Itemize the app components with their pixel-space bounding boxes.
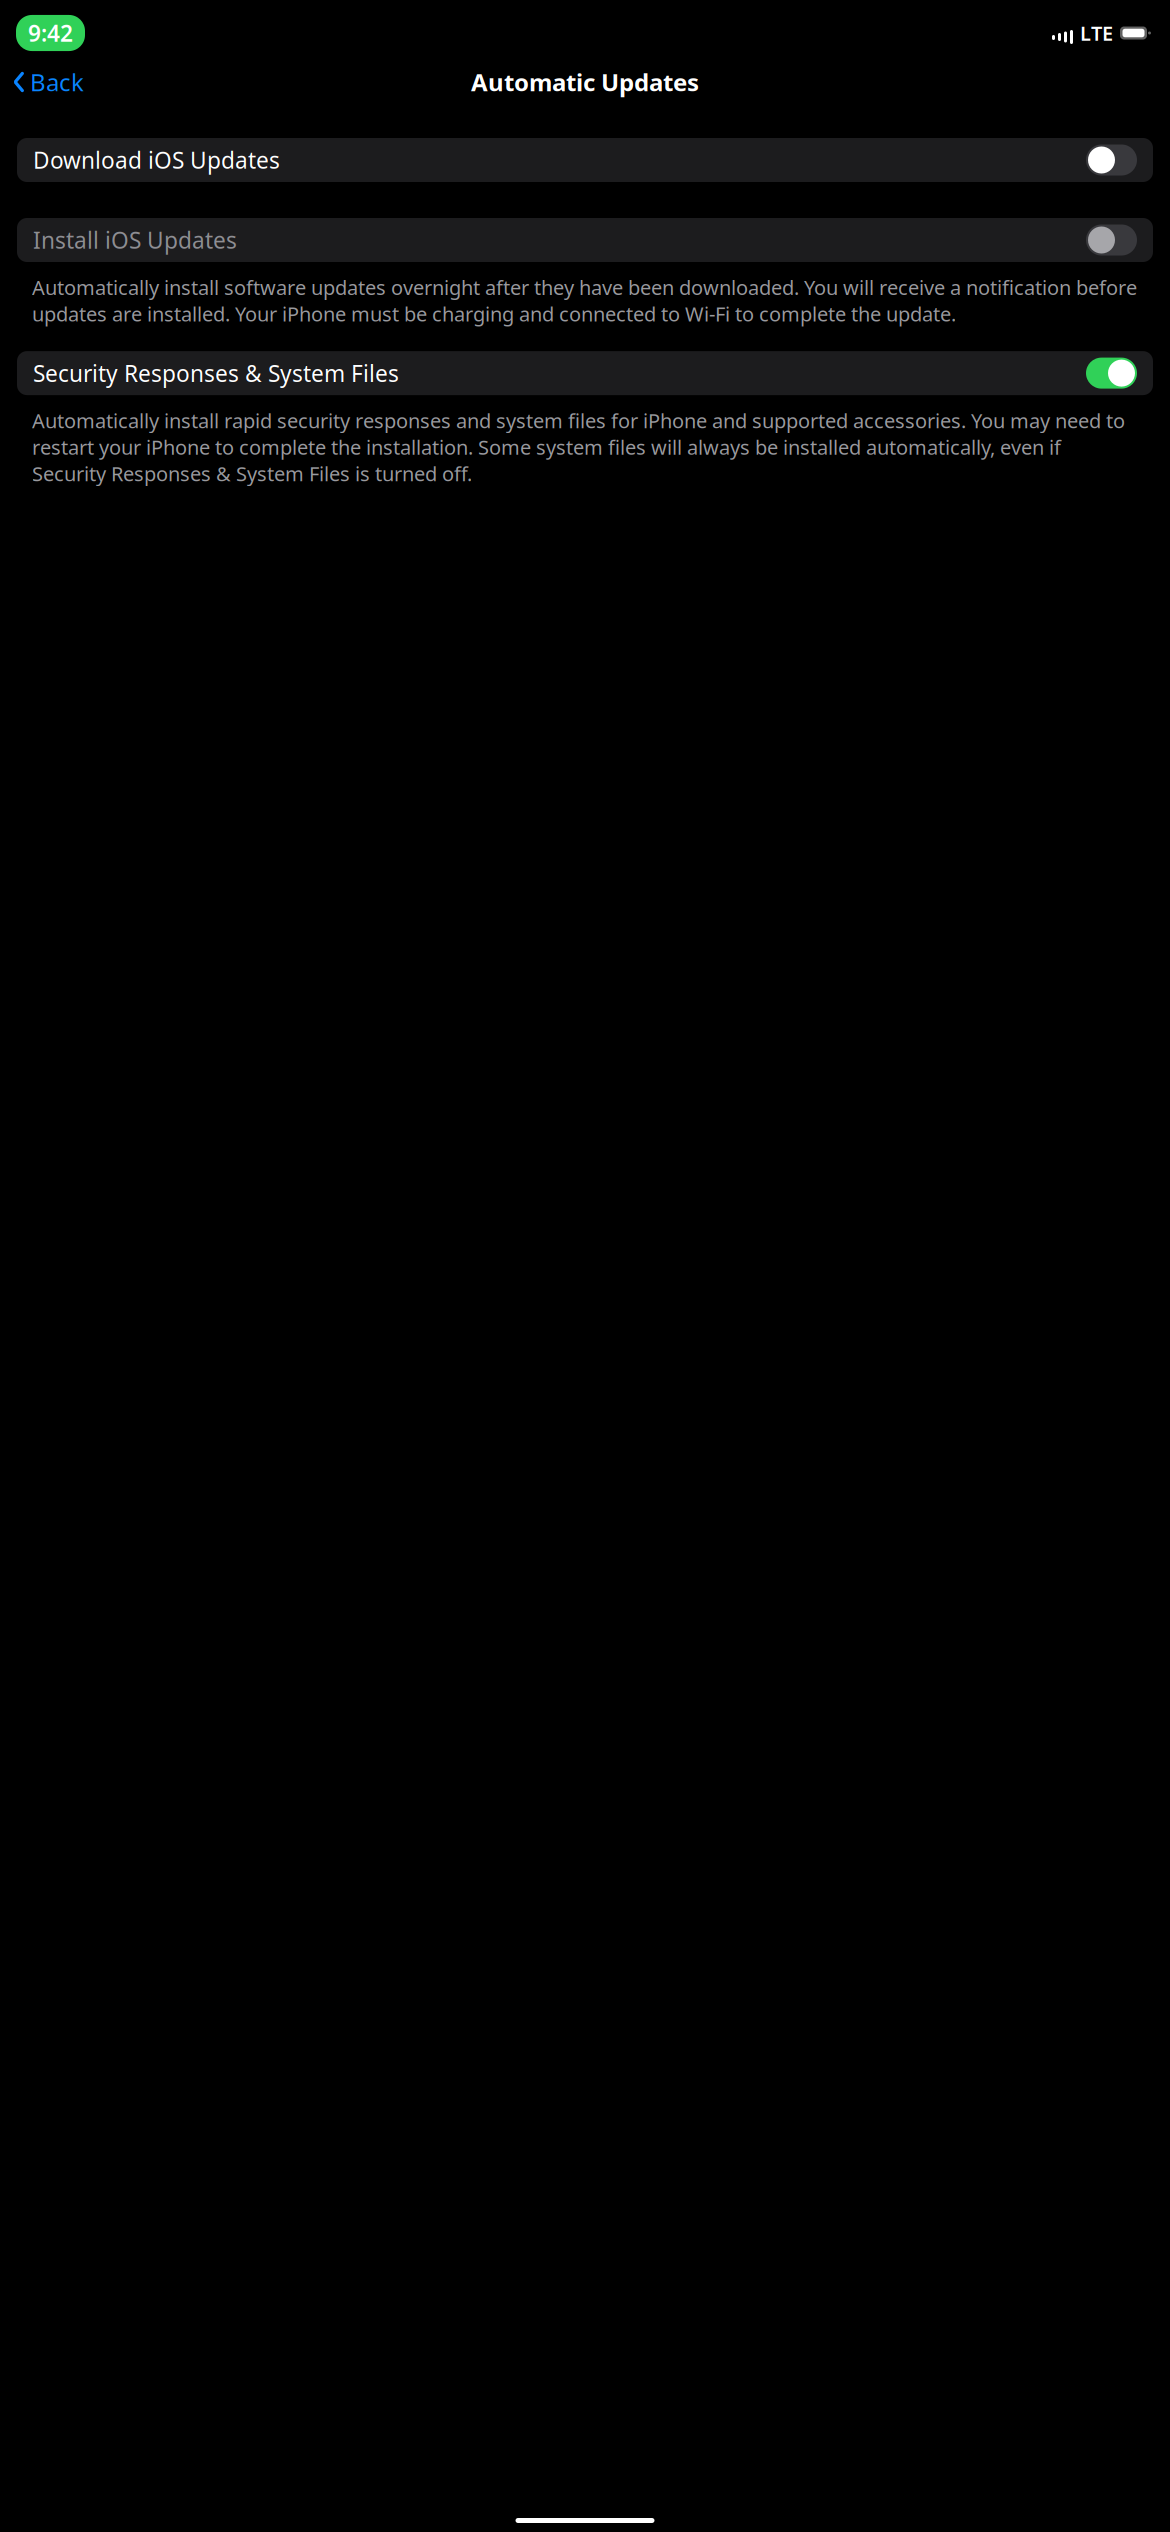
staticText: Automatically install rapid security res… xyxy=(32,407,1125,487)
staticText: 9:42 xyxy=(28,18,73,48)
staticText: Automatic Updates xyxy=(471,66,699,98)
staticText: Automatically install software updates o… xyxy=(32,274,1137,327)
staticText: Security Responses & System Files xyxy=(33,358,399,388)
button[interactable]: Download iOS Updates xyxy=(17,138,1153,182)
button[interactable]: Install iOS Updates xyxy=(17,218,1153,262)
staticText: Back xyxy=(30,66,84,98)
staticText: LTE xyxy=(1080,20,1113,46)
staticText: Install iOS Updates xyxy=(33,225,237,255)
staticText: Download iOS Updates xyxy=(33,145,280,175)
button[interactable]: Security Responses & System Files xyxy=(17,351,1153,395)
button[interactable]: Back xyxy=(5,60,92,104)
